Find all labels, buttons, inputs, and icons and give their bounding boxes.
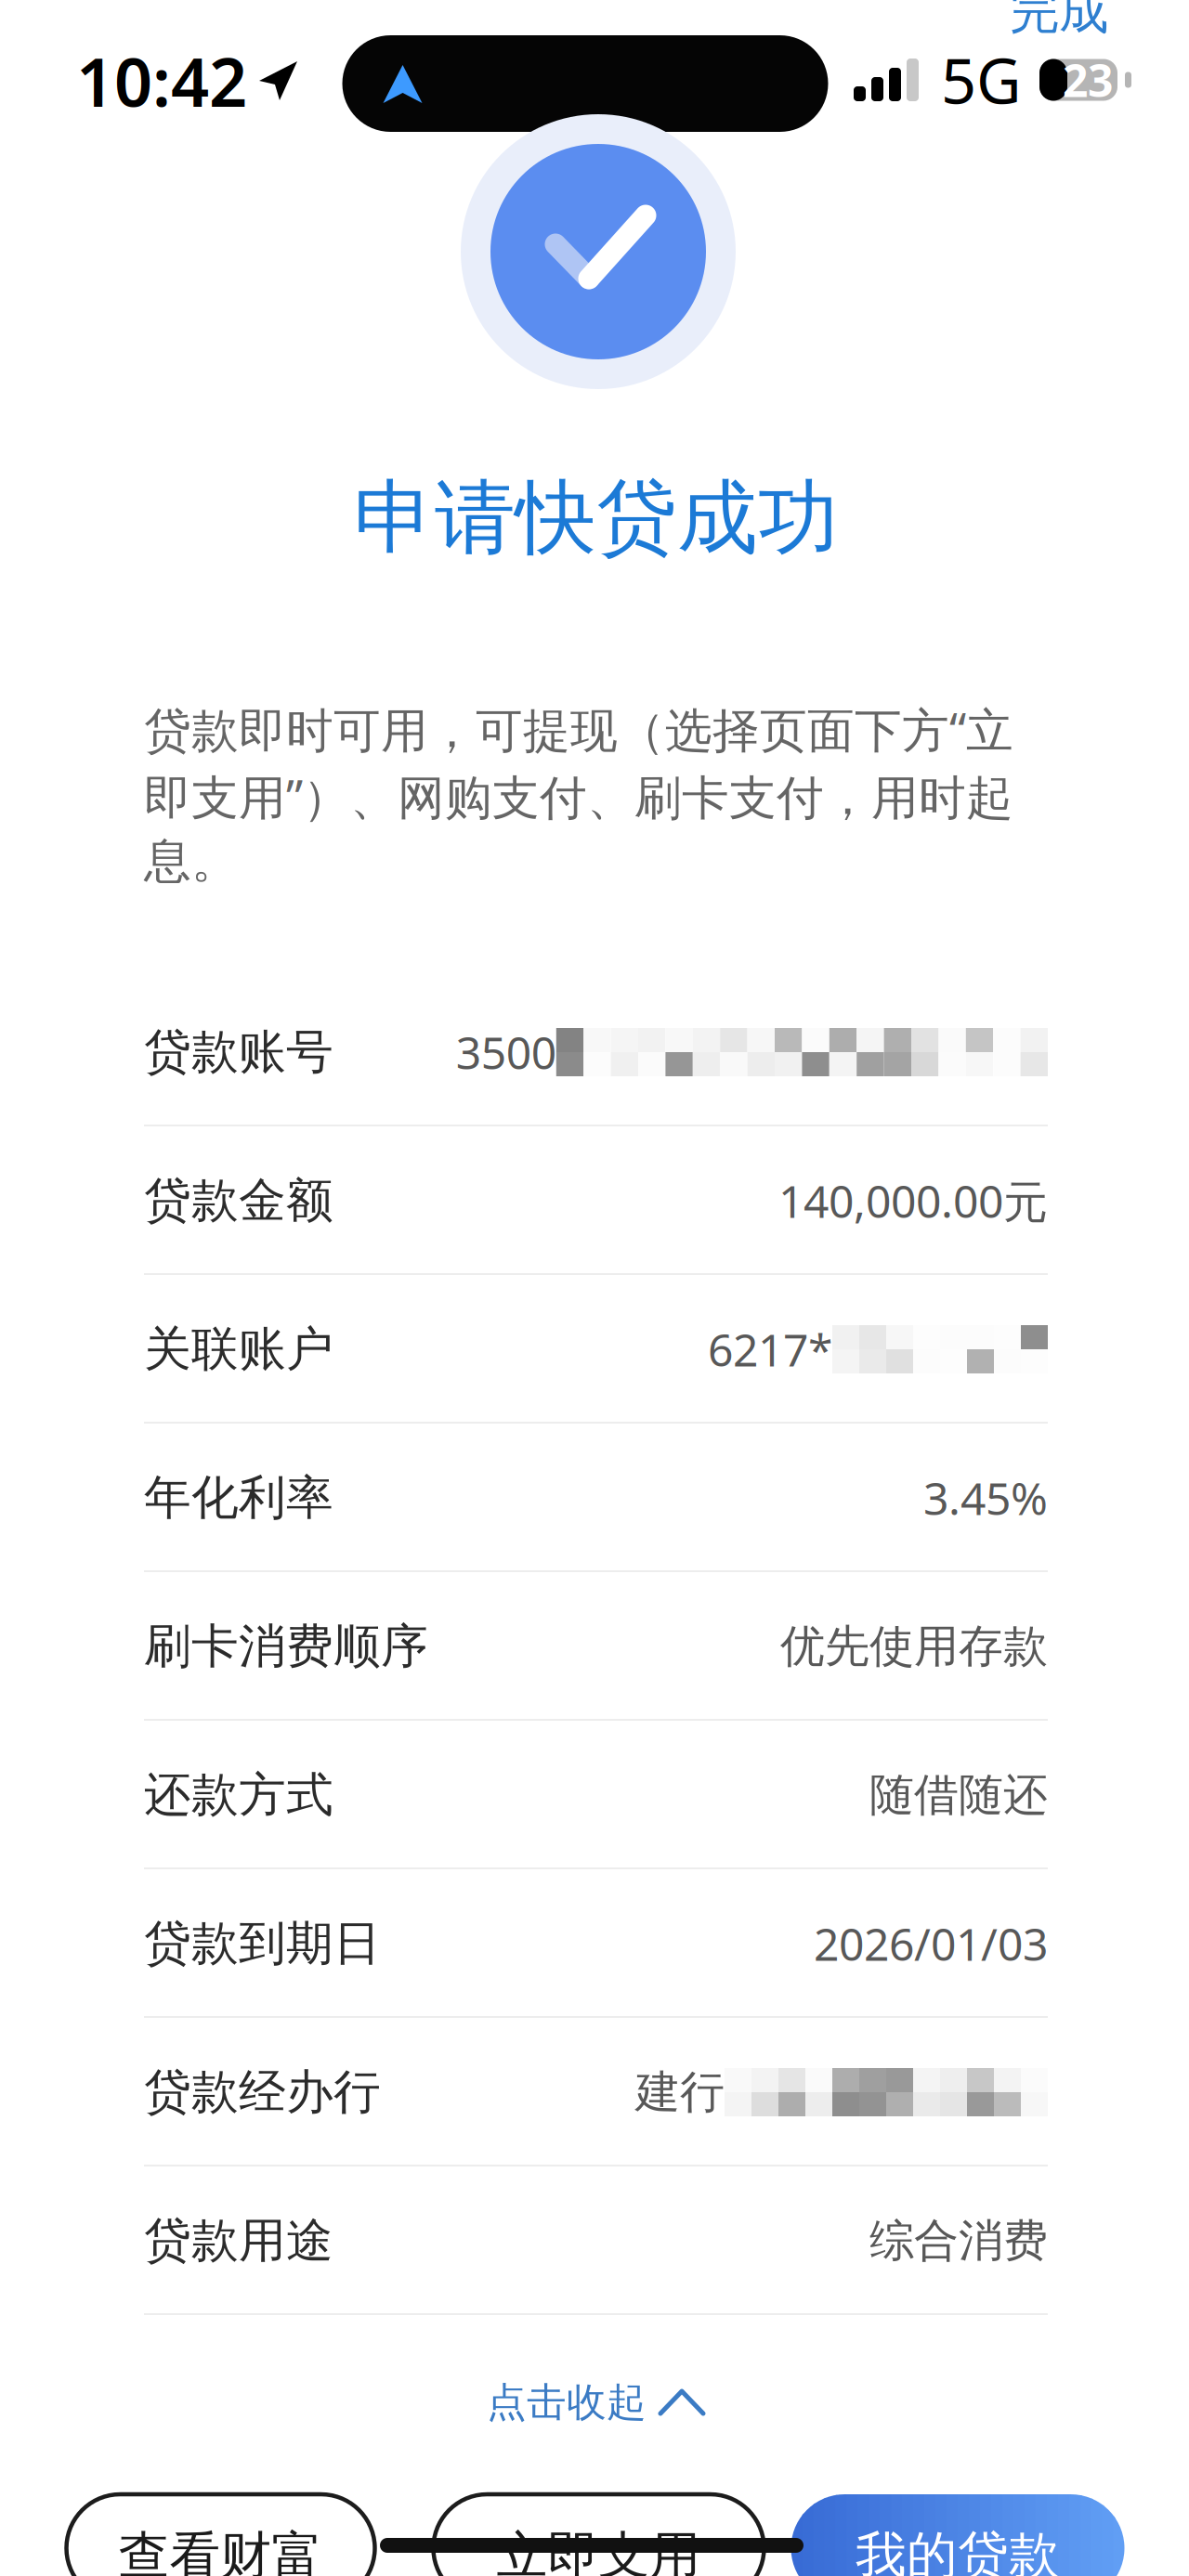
staticText: 综合消费 bbox=[869, 2213, 1048, 2268]
staticText: 优先使用存款 bbox=[780, 1619, 1048, 1674]
staticText: 立即支用 bbox=[497, 2524, 701, 2576]
staticText: 140,000.00元 bbox=[778, 1171, 1048, 1230]
staticText: 23 bbox=[1063, 50, 1113, 109]
staticText: 贷款金额 bbox=[144, 1172, 333, 1230]
staticText: 点击收起 bbox=[487, 2378, 647, 2427]
staticText: 3500 bbox=[456, 1023, 556, 1082]
button[interactable]: 我的贷款 bbox=[791, 2494, 1124, 2576]
staticText: 刷卡消费顺序 bbox=[144, 1618, 428, 1675]
staticText: 关联账户 bbox=[144, 1320, 333, 1378]
staticText: 10:42 bbox=[76, 36, 247, 125]
button[interactable]: 查看财富 bbox=[66, 2494, 375, 2576]
staticText: 6217* bbox=[708, 1320, 832, 1379]
button[interactable]: 完成 bbox=[1008, 0, 1110, 37]
staticText: 我的贷款 bbox=[856, 2524, 1060, 2576]
staticText: 申请快贷成功 bbox=[354, 469, 839, 568]
staticText: 贷款经办行 bbox=[144, 2063, 381, 2121]
staticText: 3.45% bbox=[923, 1468, 1048, 1527]
button[interactable]: 立即支用 bbox=[433, 2494, 764, 2576]
staticText: 5G bbox=[941, 39, 1022, 121]
staticText: 查看财富 bbox=[118, 2524, 323, 2576]
staticText: 建行 bbox=[635, 2065, 725, 2120]
staticText: 还款方式 bbox=[144, 1766, 333, 1824]
staticText: 完成 bbox=[1010, 0, 1108, 42]
staticText: 贷款到期日 bbox=[144, 1915, 381, 1972]
staticText: 贷款用途 bbox=[144, 2212, 333, 2270]
staticText: 年化利率 bbox=[144, 1469, 333, 1527]
staticText: 随借随还 bbox=[869, 1768, 1048, 1822]
staticText: 2026/01/03 bbox=[814, 1914, 1048, 1973]
button[interactable]: 点击收起 bbox=[397, 2354, 796, 2451]
staticText: 贷款账号 bbox=[144, 1023, 333, 1081]
staticText: 贷款即时可用，可提现（选择页面下方“立即支用”）、网购支付、刷卡支付，用时起息。 bbox=[144, 698, 1013, 890]
